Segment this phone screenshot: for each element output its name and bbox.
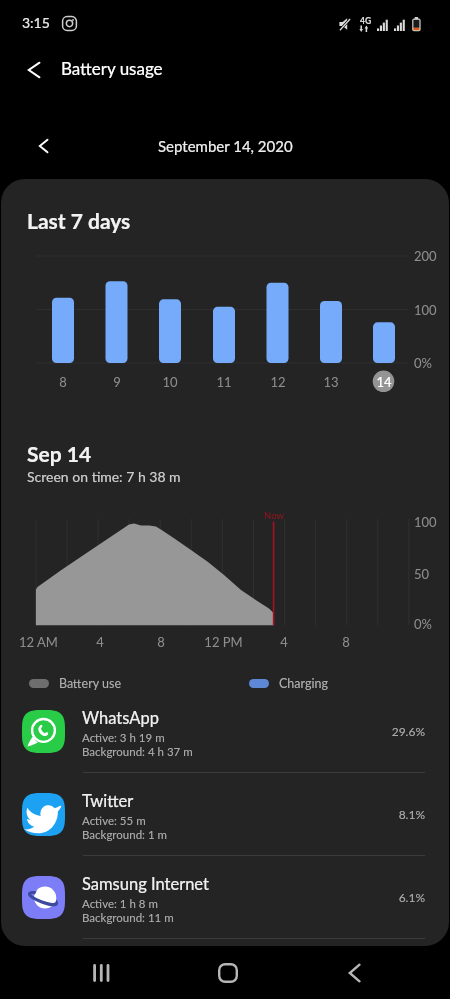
staticText: Samsung Internet [82,874,209,894]
staticText: 50 [414,566,430,582]
staticText: 6.1% [345,890,425,904]
staticText: Battery usage [61,58,163,78]
staticText: 13 [323,374,339,390]
staticText: Active: 55 m [82,814,146,828]
button[interactable]: Samsung Internet [1,869,449,946]
staticText: 200 [414,248,437,264]
staticText: 29.6% [345,724,425,738]
staticText: 8 [157,634,165,650]
staticText: 0% [414,616,432,632]
staticText: 4G [360,16,372,26]
staticText: Active: 3 h 19 m [82,731,165,745]
staticText: 12 PM [204,634,243,650]
staticText: 100 [414,302,437,318]
staticText: Sep 14 [27,441,92,466]
staticText: Background: 4 h 37 m [82,745,193,759]
staticText: Now [264,510,284,521]
staticText: 4 [280,634,288,650]
staticText: 12 [270,374,286,390]
staticText: Charging [279,676,328,691]
staticText: WhatsApp [82,708,159,728]
staticText: 10 [162,374,178,390]
staticText: 3:15 [22,14,50,31]
staticText: 4 [96,634,104,650]
staticText: 12 AM [19,634,58,650]
button[interactable]: Recent apps [84,957,116,989]
staticText: 11 [216,374,232,390]
button[interactable]: Previous day [26,129,60,163]
staticText: 8 [59,374,67,390]
staticText: 0% [414,355,432,371]
button[interactable]: WhatsApp [1,703,449,786]
button[interactable]: Back [338,957,370,989]
button[interactable]: Home [211,956,244,989]
staticText: Last 7 days [27,208,131,233]
staticText: 8.1% [345,807,425,821]
button[interactable]: Twitter [1,786,449,869]
staticText: Twitter [82,791,134,811]
staticText: Active: 1 h 8 m [82,897,158,911]
staticText: Background: 1 m [82,828,168,842]
button[interactable]: Navigate up [11,47,57,93]
staticText: September 14, 2020 [158,137,293,155]
staticText: Screen on time: 7 h 38 m [27,468,181,485]
staticText: Battery use [59,676,122,691]
staticText: 14 [376,374,392,390]
staticText: 8 [342,634,350,650]
staticText: Background: 11 m [82,911,174,925]
staticText: 100 [414,514,437,530]
staticText: 9 [113,374,121,390]
